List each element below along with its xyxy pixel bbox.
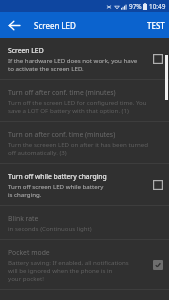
staticText: Turn the screeen LED on after it has bee… xyxy=(8,140,149,156)
button[interactable]: Turn off after conf. time (minutes) xyxy=(0,80,169,121)
staticText: Screen LED xyxy=(8,45,44,56)
staticText: Turn off while battery charging xyxy=(8,171,107,182)
button[interactable]: Turn off while battery charging xyxy=(0,164,169,205)
staticText: Turn off screen LED while battery is cha… xyxy=(8,182,104,198)
other: Toggle xyxy=(149,176,167,194)
button[interactable]: Pocket mode xyxy=(0,240,169,289)
button[interactable]: Screen LED xyxy=(0,38,169,79)
staticText: Blink rate xyxy=(8,213,39,224)
staticText: Turn on after conf. time (minutes) xyxy=(8,129,116,140)
staticText: in seconds (Continuous light) xyxy=(8,224,92,232)
other: Toggle xyxy=(149,256,167,274)
button[interactable]: Navigate up xyxy=(0,12,29,38)
staticText: 10:49 xyxy=(149,2,166,11)
other: Toggle xyxy=(149,50,167,68)
staticText: Turn off after conf. time (minutes) xyxy=(8,87,116,98)
staticText: If the hardware LED does not work, you h… xyxy=(8,56,138,72)
staticText: Battery saving: If enabled, all notifica… xyxy=(8,258,129,282)
staticText: TEST xyxy=(147,20,165,31)
staticText: Screen LED xyxy=(34,20,76,31)
button[interactable]: Blink rate xyxy=(0,206,169,239)
button[interactable]: TEST xyxy=(140,12,169,38)
staticText: 97% xyxy=(129,2,142,11)
button[interactable]: Turn on after conf. time (minutes) xyxy=(0,122,169,163)
staticText: Turn off the screen LED for configured t… xyxy=(8,98,147,114)
staticText: Pocket mode xyxy=(8,247,50,258)
